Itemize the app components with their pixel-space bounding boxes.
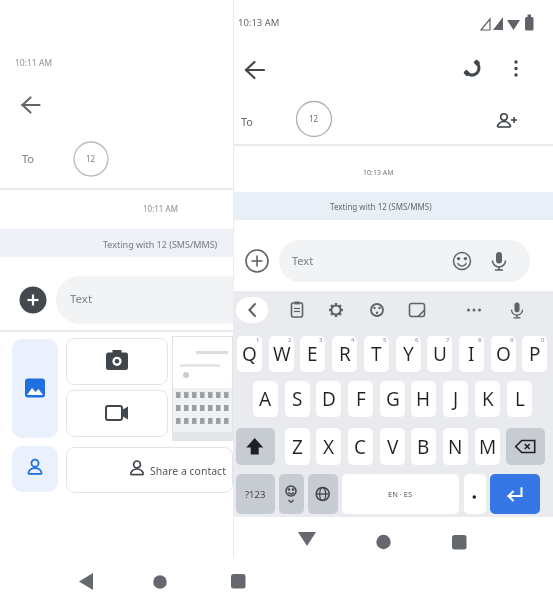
- button[interactable]: Text: [279, 240, 530, 282]
- button[interactable]: [487, 249, 511, 273]
- staticText: Texting with 12 (SMS/MMS): [330, 201, 432, 212]
- button[interactable]: N: [443, 428, 468, 465]
- staticText: 10:11 AM: [143, 203, 178, 214]
- button[interactable]: [450, 249, 474, 273]
- staticText: V: [387, 434, 399, 460]
- staticText: Texting with 12 (SMS/MMS): [103, 238, 218, 250]
- button[interactable]: M: [475, 428, 500, 465]
- button[interactable]: Y: [396, 336, 421, 372]
- button[interactable]: B: [411, 428, 436, 465]
- button[interactable]: [442, 526, 474, 554]
- staticText: 8: [478, 336, 482, 344]
- button[interactable]: R: [332, 336, 357, 372]
- staticText: L: [515, 386, 525, 412]
- button[interactable]: [245, 249, 269, 273]
- button[interactable]: Z: [285, 428, 310, 465]
- button[interactable]: [506, 428, 545, 465]
- button[interactable]: [12, 339, 58, 438]
- button[interactable]: O: [491, 336, 516, 372]
- button[interactable]: [12, 446, 58, 492]
- button[interactable]: [285, 298, 309, 322]
- staticText: F: [356, 386, 366, 412]
- button[interactable]: [365, 298, 389, 322]
- button[interactable]: D: [316, 381, 341, 417]
- button[interactable]: C: [348, 428, 373, 465]
- button[interactable]: W: [269, 336, 294, 372]
- staticText: 2: [288, 336, 292, 344]
- button[interactable]: [462, 298, 486, 322]
- button[interactable]: [490, 106, 522, 138]
- button[interactable]: H: [411, 381, 436, 417]
- button[interactable]: [405, 298, 429, 322]
- button[interactable]: [172, 336, 233, 441]
- button[interactable]: [66, 390, 168, 437]
- button[interactable]: [279, 474, 304, 514]
- staticText: X: [323, 434, 335, 460]
- staticText: H: [416, 386, 431, 412]
- button[interactable]: E: [300, 336, 325, 372]
- button[interactable]: A: [253, 381, 278, 417]
- staticText: M: [479, 434, 497, 460]
- button[interactable]: [324, 298, 348, 322]
- button[interactable]: [502, 52, 530, 84]
- button[interactable]: [74, 142, 108, 176]
- staticText: 12: [309, 113, 319, 124]
- button[interactable]: [456, 52, 488, 84]
- staticText: N: [448, 434, 463, 460]
- staticText: O: [496, 341, 511, 367]
- staticText: 6: [415, 336, 419, 344]
- staticText: Text: [292, 253, 314, 268]
- button[interactable]: [464, 474, 486, 514]
- staticText: ?123: [245, 488, 266, 501]
- button[interactable]: G: [380, 381, 405, 417]
- button[interactable]: V: [380, 428, 405, 465]
- button[interactable]: [291, 526, 323, 554]
- button[interactable]: [505, 298, 529, 322]
- button[interactable]: [240, 54, 272, 86]
- button[interactable]: [16, 90, 46, 120]
- button[interactable]: K: [475, 381, 500, 417]
- staticText: T: [371, 341, 382, 367]
- button[interactable]: [296, 101, 332, 137]
- button[interactable]: Q: [237, 336, 262, 372]
- staticText: Share a contact: [150, 464, 226, 478]
- button[interactable]: [66, 447, 233, 493]
- button[interactable]: [144, 566, 178, 596]
- staticText: R: [339, 341, 351, 367]
- button[interactable]: J: [443, 381, 468, 417]
- button[interactable]: [490, 474, 540, 514]
- staticText: EN · ES: [388, 489, 413, 499]
- button[interactable]: [236, 297, 268, 323]
- staticText: I: [468, 341, 475, 367]
- button[interactable]: [222, 566, 256, 596]
- button[interactable]: U: [427, 336, 452, 372]
- staticText: G: [386, 386, 400, 412]
- button[interactable]: [308, 474, 338, 514]
- staticText: B: [417, 434, 430, 460]
- button[interactable]: F: [348, 381, 373, 417]
- staticText: Q: [242, 341, 257, 367]
- button[interactable]: S: [285, 381, 310, 417]
- button[interactable]: ?123: [236, 474, 275, 514]
- button[interactable]: [19, 286, 47, 314]
- staticText: 4: [351, 336, 355, 344]
- button[interactable]: EN · ES: [342, 474, 459, 514]
- button[interactable]: [66, 566, 100, 596]
- button[interactable]: L: [507, 381, 532, 417]
- button[interactable]: Text: [56, 276, 233, 324]
- button[interactable]: [236, 428, 275, 465]
- staticText: To: [22, 151, 35, 166]
- button[interactable]: X: [316, 428, 341, 465]
- button[interactable]: I: [459, 336, 484, 372]
- staticText: D: [322, 386, 336, 412]
- staticText: 12: [86, 153, 96, 164]
- button[interactable]: P: [522, 336, 547, 372]
- staticText: 0: [541, 336, 545, 344]
- staticText: 10:13 AM: [363, 168, 394, 178]
- staticText: Y: [403, 341, 414, 367]
- button[interactable]: [367, 526, 399, 554]
- staticText: To: [241, 114, 254, 129]
- staticText: 5: [383, 336, 387, 344]
- button[interactable]: T: [364, 336, 389, 372]
- button[interactable]: [66, 338, 168, 385]
